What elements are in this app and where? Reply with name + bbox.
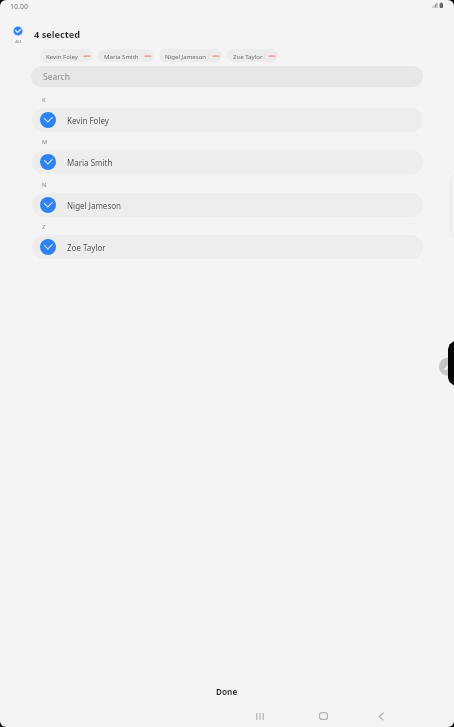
button[interactable]: Done	[0, 676, 454, 706]
staticText: Kevin Foley	[67, 115, 109, 126]
staticText: Maria Smith	[104, 52, 139, 60]
staticText: Kevin Foley	[46, 52, 78, 60]
staticText: Nigel Jameson	[165, 52, 207, 60]
staticText: 10.00	[10, 2, 28, 12]
staticText: K	[42, 96, 46, 104]
staticText: Nigel Jameson	[67, 200, 121, 211]
button[interactable]: Select all	[8, 26, 28, 43]
button[interactable]: Edge panel handle	[437, 340, 454, 387]
staticText: N	[42, 181, 47, 189]
button[interactable]: Kevin Foley	[40, 49, 93, 62]
button[interactable]: Recents	[248, 704, 272, 727]
button[interactable]: Maria Smith	[32, 150, 423, 174]
button[interactable]: Maria Smith	[98, 49, 154, 62]
button[interactable]: Kevin Foley	[32, 108, 423, 132]
button[interactable]: Zoe Taylor	[32, 235, 423, 259]
staticText: Zoe Taylor	[233, 52, 263, 60]
staticText: M	[42, 138, 48, 146]
staticText: Search	[43, 71, 70, 83]
button[interactable]: Home	[311, 704, 335, 727]
button[interactable]: Search	[31, 66, 423, 87]
staticText: 4 selected	[34, 28, 80, 41]
staticText: Maria Smith	[67, 157, 113, 168]
staticText: Zoe Taylor	[67, 242, 106, 253]
button[interactable]: Zoe Taylor	[227, 49, 278, 62]
staticText: All	[15, 38, 21, 43]
staticText: Done	[216, 686, 238, 697]
staticText: Z	[42, 223, 46, 231]
button[interactable]: Nigel Jameson	[32, 193, 423, 217]
button[interactable]: Back	[369, 704, 393, 727]
button[interactable]: Nigel Jameson	[159, 49, 222, 62]
